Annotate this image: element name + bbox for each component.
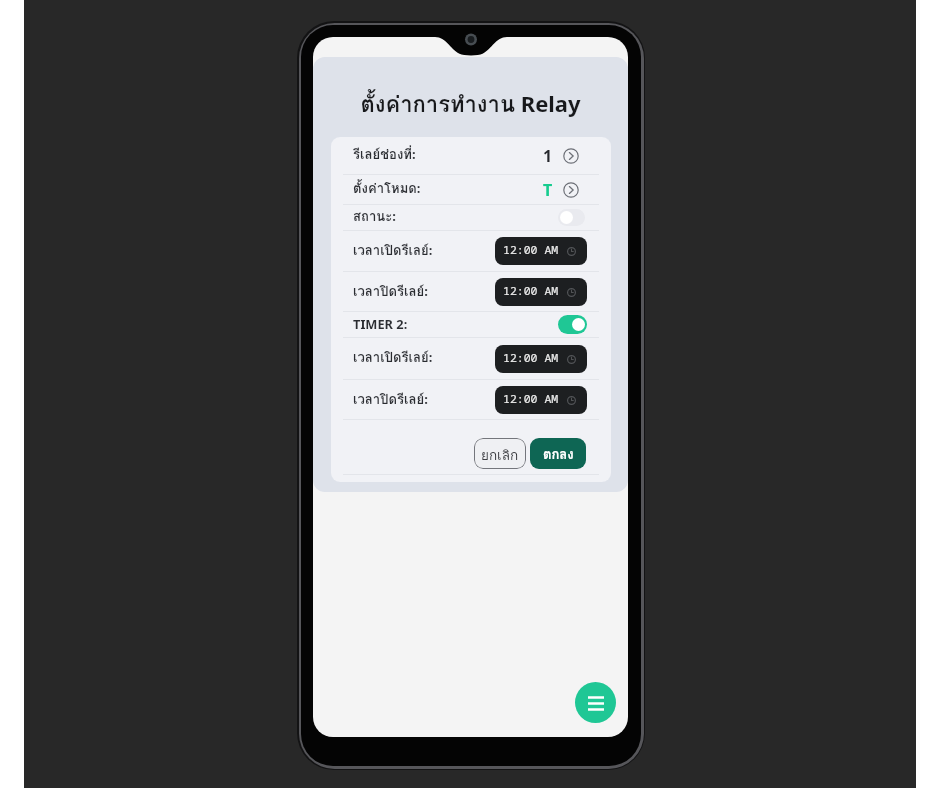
button[interactable] [558,315,587,334]
staticText: 12:00 AM [503,350,559,366]
staticText: สถานะ: [353,206,396,227]
button[interactable]: 12:00 AM [495,237,587,265]
button[interactable]: ยกเลิก [474,438,526,469]
button[interactable]: TIMER 2: [331,312,611,337]
staticText: 1 [543,145,553,167]
staticText: ตั้งค่าโหมด: [353,178,421,199]
staticText: TIMER 2: [353,315,408,332]
staticText: 12:00 AM [503,283,559,299]
button[interactable]: เวลาเปิดรีเลย์: [331,231,611,271]
button[interactable]: ตกลง [530,438,586,469]
staticText: 12:00 AM [503,242,559,258]
button[interactable]: 12:00 AM [495,278,587,306]
staticText: เวลาเปิดรีเลย์: [353,347,433,368]
staticText: เวลาปิดรีเลย์: [353,281,428,302]
button[interactable]: สถานะ: [331,205,611,230]
staticText: T [543,179,553,201]
button[interactable]: ตั้งค่าโหมด: [331,175,611,204]
staticText: ตกลง [543,444,574,465]
staticText: รีเลย์ช่องที่: [353,144,416,165]
button[interactable]: เวลาปิดรีเลย์: [331,272,611,312]
button[interactable]: 12:00 AM [495,386,587,414]
button[interactable]: เวลาปิดรีเลย์: [331,380,611,420]
staticText: 12:00 AM [503,391,559,407]
button[interactable]: Menu [575,682,616,723]
button[interactable]: รีเลย์ช่องที่: [331,137,611,174]
button[interactable]: เวลาเปิดรีเลย์: [331,338,611,379]
staticText: ยกเลิก [481,444,519,465]
staticText: เวลาปิดรีเลย์: [353,389,428,410]
button[interactable] [558,209,585,226]
staticText: ตั้งค่าการทำงาน Relay [313,87,628,122]
button[interactable]: 12:00 AM [495,345,587,373]
staticText: เวลาเปิดรีเลย์: [353,240,433,261]
